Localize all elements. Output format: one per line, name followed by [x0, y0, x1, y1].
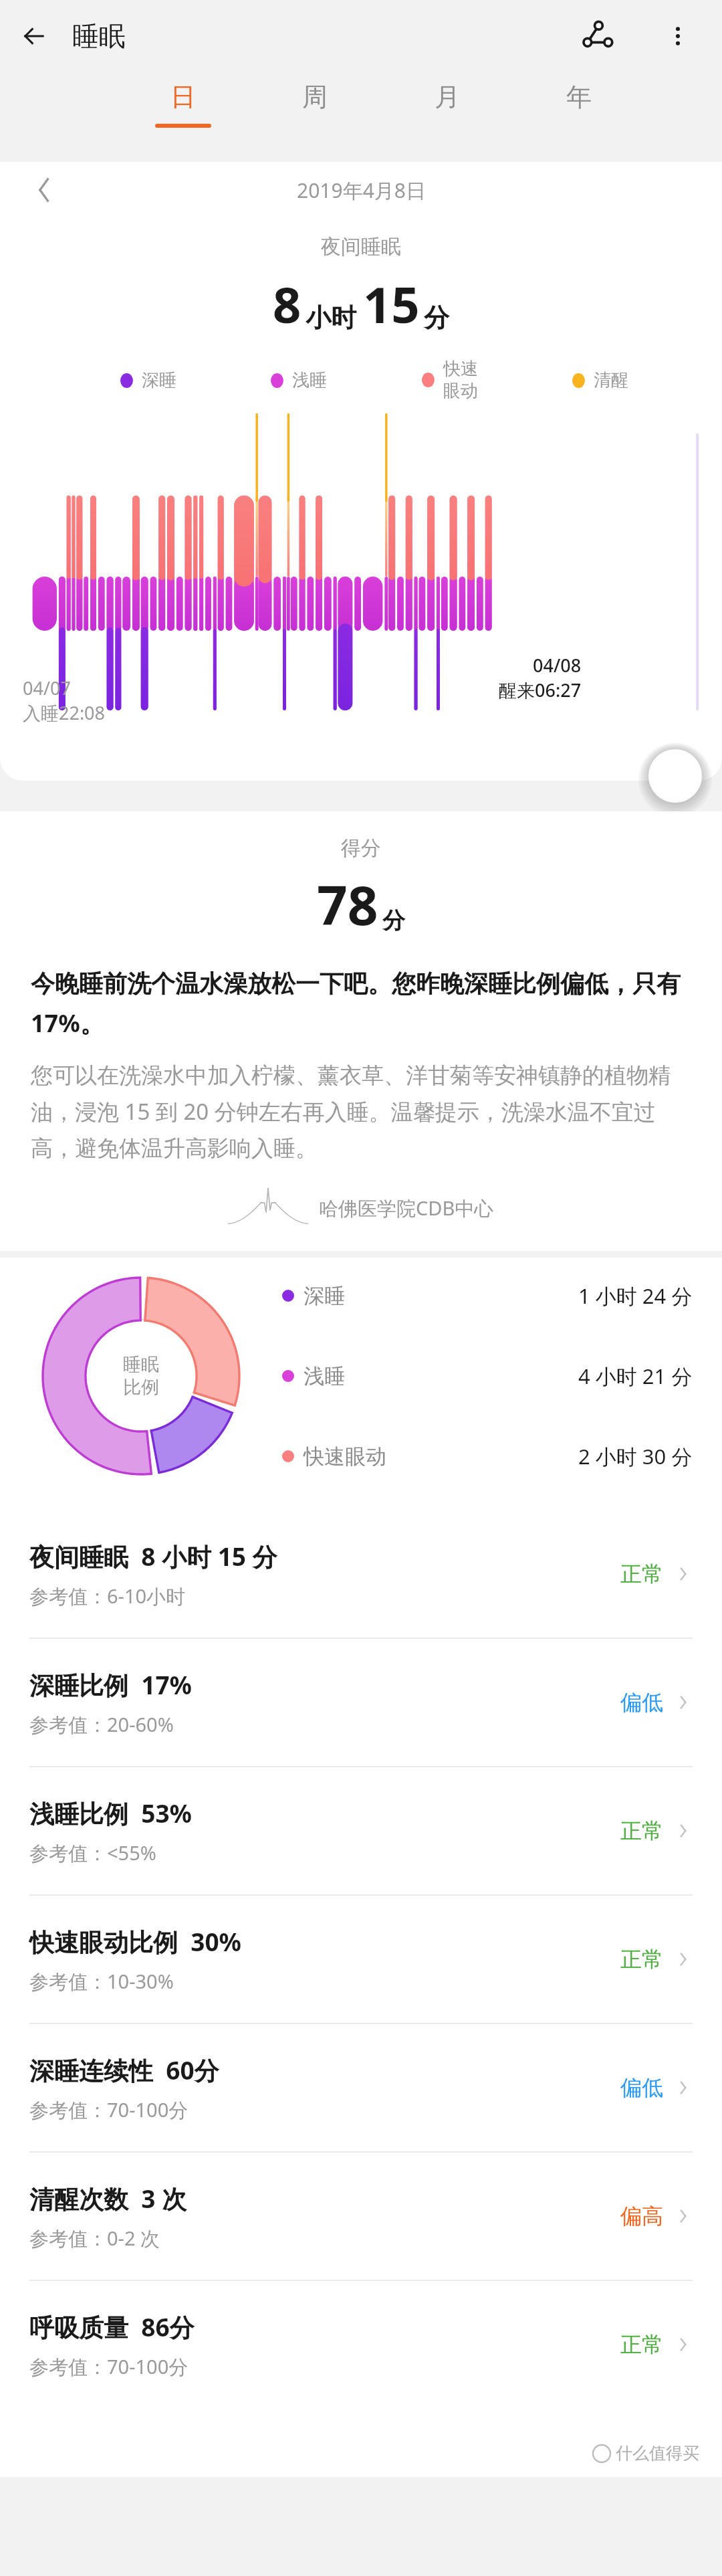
- button[interactable]: 浅睡比例 53%: [0, 1767, 722, 1894]
- staticText: 快速: [443, 358, 478, 380]
- staticText: 分: [424, 302, 449, 334]
- staticText: 78: [317, 868, 378, 940]
- staticText: 睡眠: [72, 19, 126, 53]
- button[interactable]: Sleep ratio chart: [43, 1278, 239, 1474]
- staticText: 正常: [620, 1946, 663, 1973]
- button[interactable]: 夜间睡眠 8 小时 15 分: [0, 1510, 722, 1638]
- button[interactable]: 清醒次数 3 次: [0, 2153, 722, 2280]
- staticText: 哈佛医学院CDB中心: [319, 1195, 494, 1221]
- staticText: 入睡22:08: [23, 700, 106, 725]
- staticText: 得分: [0, 835, 722, 861]
- button[interactable]: 快速眼动比例 30%: [0, 1896, 722, 2023]
- staticText: 您可以在洗澡水中加入柠檬、薰衣草、洋甘菊等安神镇静的植物精油，浸泡 15 到 2…: [31, 1062, 691, 1163]
- button[interactable]: 日: [155, 72, 211, 159]
- staticText: 小时: [306, 302, 356, 334]
- staticText: 参考值：70-100分: [29, 2353, 189, 2380]
- button[interactable]: Sleep detail: [650, 751, 701, 801]
- staticText: 8: [273, 270, 302, 338]
- staticText: 周: [302, 81, 328, 113]
- button[interactable]: 深睡连续性 60分: [0, 2024, 722, 2151]
- staticText: 眼动: [443, 380, 478, 402]
- staticText: 偏高: [620, 2203, 663, 2230]
- staticText: 04/07: [23, 676, 71, 700]
- staticText: 正常: [620, 1561, 663, 1587]
- staticText: 比例: [123, 1376, 159, 1399]
- staticText: 15: [363, 270, 420, 338]
- staticText: 睡眠: [123, 1353, 159, 1376]
- staticText: 深睡: [142, 369, 176, 391]
- staticText: 正常: [620, 1817, 663, 1844]
- staticText: 快速眼动比例 30%: [29, 1924, 241, 1959]
- staticText: 什么值得买: [616, 2443, 699, 2464]
- staticText: 呼吸质量 86分: [29, 2310, 195, 2344]
- button[interactable]: More options: [654, 12, 702, 60]
- staticText: 浅睡: [292, 369, 327, 391]
- button[interactable]: 呼吸质量 86分: [0, 2281, 722, 2408]
- staticText: 偏低: [620, 2074, 663, 2101]
- staticText: 参考值：<55%: [29, 1840, 156, 1866]
- staticText: 参考值：10-30%: [29, 1968, 174, 1995]
- button[interactable]: 深睡比例 17%: [0, 1639, 722, 1766]
- staticText: 2 小时 30 分: [578, 1442, 693, 1470]
- staticText: 参考值：0-2 次: [29, 2225, 160, 2252]
- staticText: 年: [566, 81, 592, 113]
- staticText: 深睡比例 17%: [29, 1668, 192, 1702]
- staticText: 月: [435, 81, 460, 113]
- staticText: 浅睡比例 53%: [29, 1796, 192, 1830]
- staticText: 偏低: [620, 1689, 663, 1716]
- staticText: 4 小时 21 分: [578, 1362, 693, 1390]
- button[interactable]: Back: [12, 14, 56, 58]
- staticText: 夜间睡眠: [0, 234, 722, 260]
- staticText: 04/08: [533, 653, 582, 678]
- button[interactable]: 周: [287, 72, 343, 159]
- staticText: 日: [170, 81, 196, 113]
- staticText: 快速眼动: [304, 1444, 386, 1470]
- staticText: 2019年4月8日: [297, 177, 426, 204]
- staticText: 分: [382, 906, 405, 935]
- staticText: 浅睡: [304, 1363, 345, 1389]
- staticText: 参考值：6-10小时: [29, 1583, 186, 1609]
- button[interactable]: 月: [419, 72, 475, 159]
- staticText: 清醒: [594, 369, 628, 391]
- staticText: 1 小时 24 分: [578, 1282, 693, 1310]
- staticText: 夜间睡眠 8 小时 15 分: [29, 1539, 277, 1573]
- staticText: 清醒次数 3 次: [29, 2181, 187, 2215]
- staticText: 参考值：20-60%: [29, 1711, 174, 1738]
- button[interactable]: Share: [574, 12, 622, 60]
- staticText: 深睡: [304, 1283, 345, 1309]
- staticText: 今晚睡前洗个温水澡放松一下吧。您昨晚深睡比例偏低，只有17%。: [31, 969, 691, 1039]
- staticText: 参考值：70-100分: [29, 2096, 189, 2123]
- button[interactable]: 年: [551, 72, 607, 159]
- staticText: 醒来06:27: [499, 678, 582, 702]
- button[interactable]: Previous day: [25, 172, 62, 208]
- staticText: 正常: [620, 2331, 663, 2358]
- staticText: 深睡连续性 60分: [29, 2053, 219, 2087]
